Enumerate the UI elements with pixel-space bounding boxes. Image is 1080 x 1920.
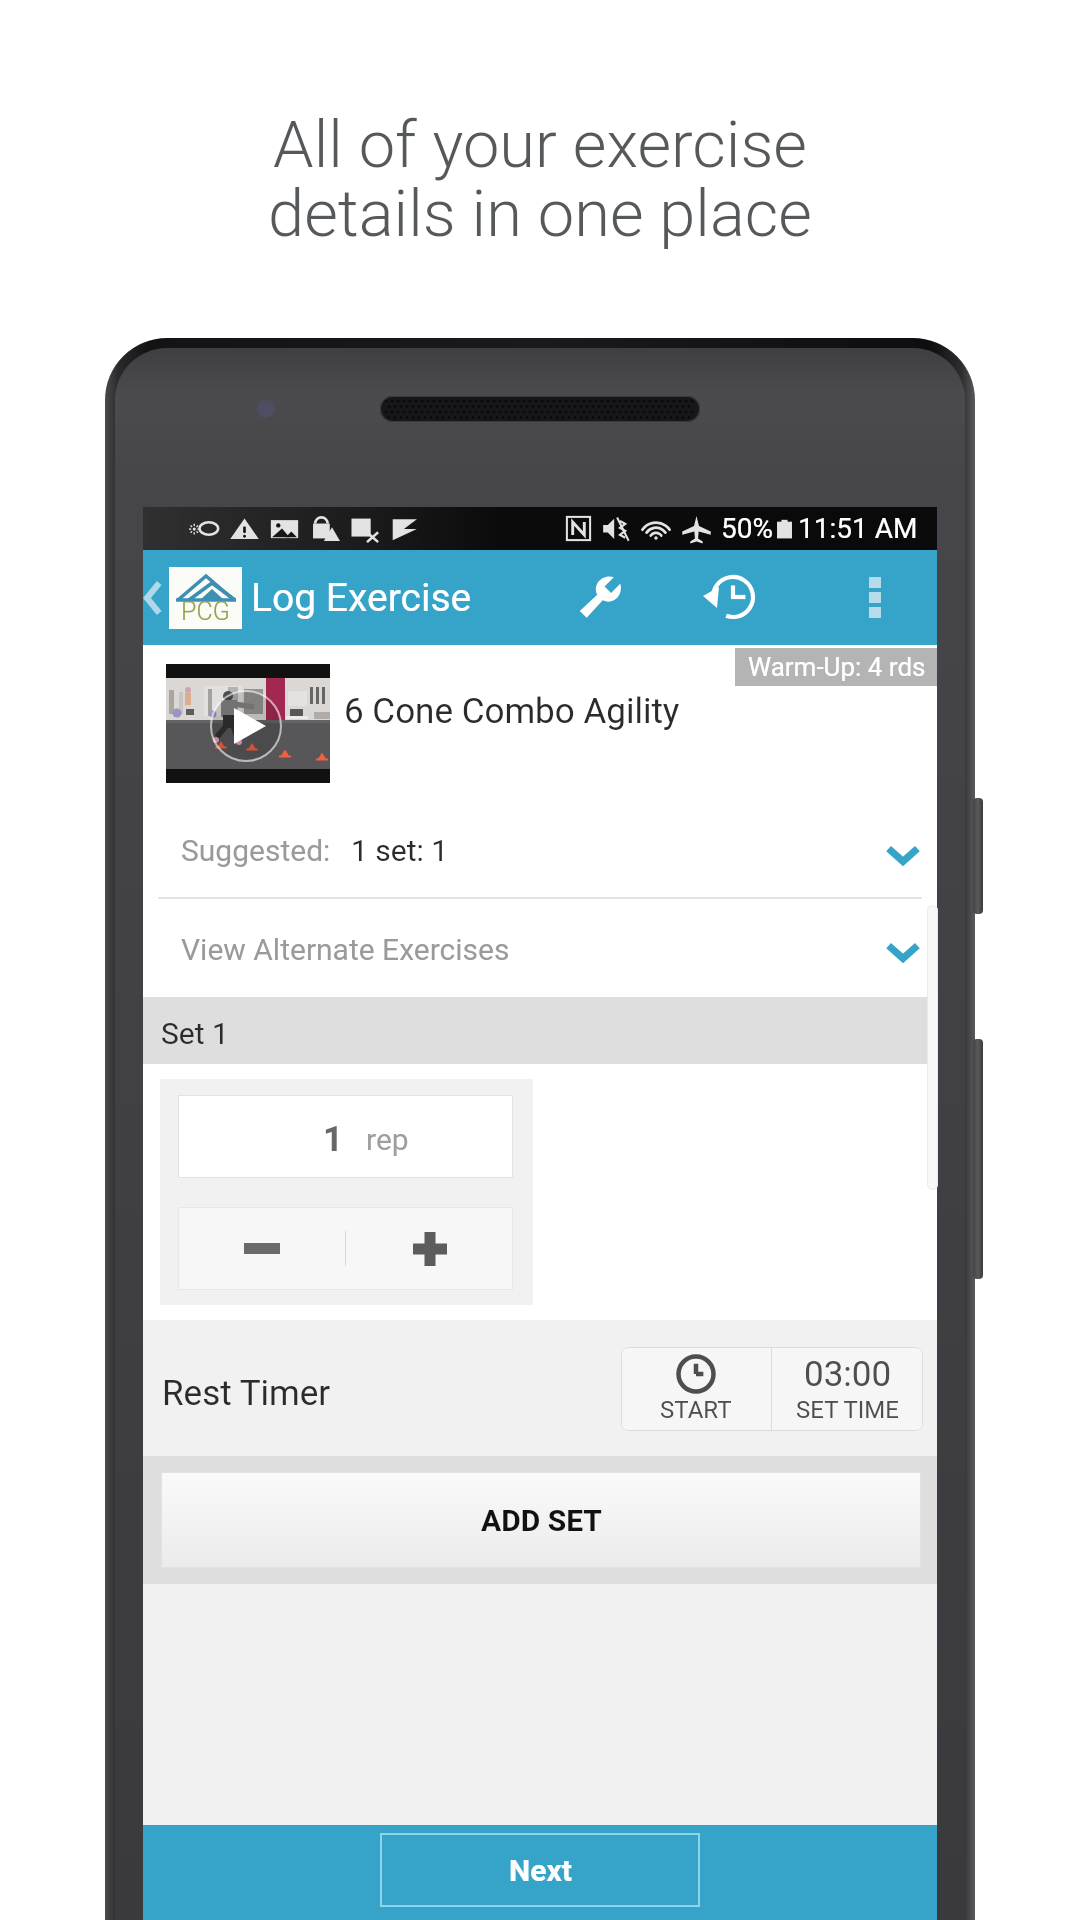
button[interactable]: 03:00 — [772, 1347, 923, 1431]
button[interactable]: ADD SET — [161, 1472, 921, 1568]
button[interactable]: START — [621, 1347, 771, 1431]
staticText: Set 1 — [161, 1016, 229, 1051]
staticText: 6 Cone Combo Agility — [344, 691, 680, 732]
button[interactable]: 1 — [178, 1095, 513, 1178]
button[interactable]: Settings — [552, 550, 647, 645]
staticText: Rest Timer — [162, 1373, 331, 1414]
staticText: Warm-Up: 4 rds — [748, 652, 926, 682]
staticText: rep — [366, 1122, 409, 1157]
button[interactable]: Suggested: — [143, 800, 937, 899]
staticText: 11:51 AM — [798, 512, 918, 545]
staticText: START — [660, 1396, 732, 1424]
staticText: details in one place — [0, 176, 1080, 252]
staticText: 1 set: 1 — [351, 833, 449, 868]
button[interactable]: PCG — [143, 550, 472, 645]
staticText: Suggested: — [181, 833, 331, 868]
button[interactable]: Next — [380, 1833, 700, 1907]
staticText: ADD SET — [481, 1503, 602, 1538]
staticText: 03:00 — [804, 1354, 892, 1395]
staticText: View Alternate Exercises — [181, 932, 510, 967]
staticText: SET TIME — [796, 1396, 899, 1424]
button[interactable]: Decrease reps — [178, 1207, 345, 1290]
button[interactable]: History — [681, 550, 776, 645]
staticText: Log Exercise — [251, 575, 472, 621]
staticText: 1 — [323, 1119, 344, 1160]
button[interactable]: Play video — [166, 664, 330, 783]
staticText: 50% — [721, 512, 773, 545]
button[interactable]: More options — [833, 550, 917, 645]
staticText: Next — [509, 1853, 572, 1888]
staticText: All of your exercise — [0, 107, 1080, 183]
button[interactable]: Increase reps — [346, 1207, 513, 1290]
staticText: PCG — [181, 597, 230, 626]
button[interactable]: View Alternate Exercises — [143, 899, 937, 997]
